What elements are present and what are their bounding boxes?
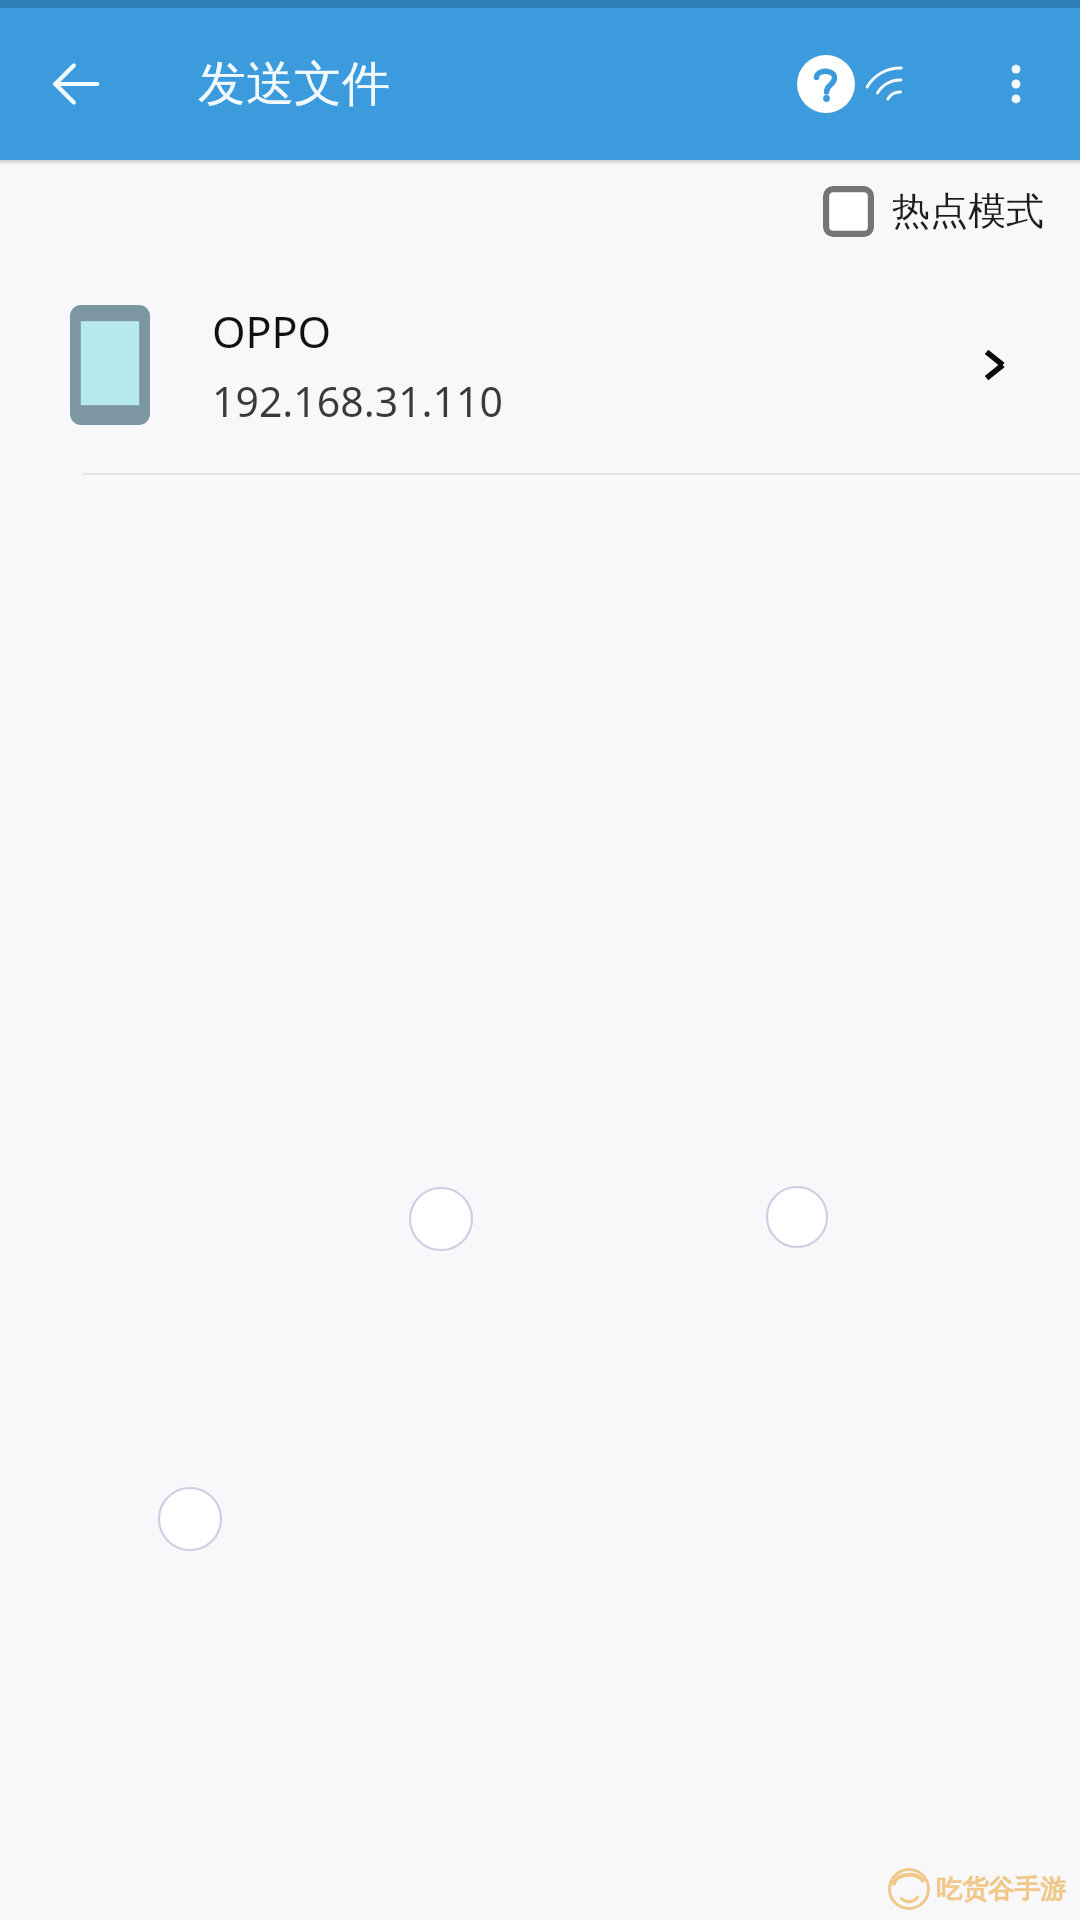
staticText: 吃货谷手游 [936,1873,1066,1906]
button[interactable]: 热点模式 [0,165,1080,257]
button[interactable]: Help [778,36,874,132]
staticText: 热点模式 [892,187,1044,235]
button[interactable]: Open device [946,317,1042,413]
button[interactable]: Back [32,40,120,128]
staticText: 192.168.31.110 [212,373,503,429]
button[interactable]: Wi-Fi [874,36,970,132]
staticText: OPPO [212,302,332,361]
staticText: 发送文件 [198,54,390,114]
button[interactable]: More options [970,38,1062,130]
button[interactable]: OPPO [0,257,1080,473]
